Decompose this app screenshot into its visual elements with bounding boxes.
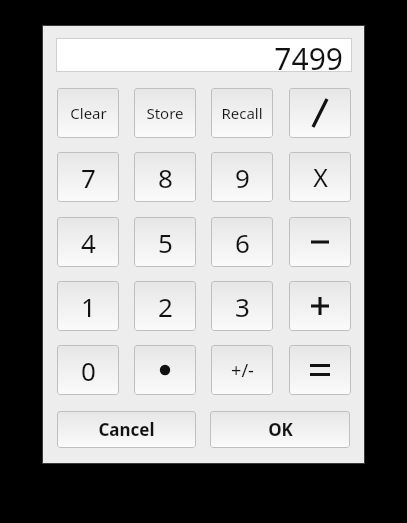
button[interactable]: 6 xyxy=(211,217,273,267)
staticText: Store xyxy=(146,103,184,123)
button[interactable]: Decimal point xyxy=(134,345,196,395)
staticText: 1 xyxy=(81,289,96,324)
staticText: +/- xyxy=(231,358,254,383)
button[interactable]: 8 xyxy=(134,152,196,202)
button[interactable]: Store xyxy=(134,88,196,138)
staticText: 4 xyxy=(81,225,96,260)
button[interactable]: Clear xyxy=(57,88,119,138)
button[interactable]: Recall xyxy=(211,88,273,138)
button[interactable]: OK xyxy=(210,411,350,448)
button[interactable]: Equals xyxy=(289,345,351,395)
staticText: Cancel xyxy=(98,418,155,441)
button[interactable]: 2 xyxy=(134,281,196,331)
button[interactable]: 5 xyxy=(134,217,196,267)
staticText: OK xyxy=(268,418,293,441)
button[interactable]: 7 xyxy=(57,152,119,202)
button[interactable]: X xyxy=(289,152,351,202)
button[interactable]: 9 xyxy=(211,152,273,202)
button[interactable]: Cancel xyxy=(57,411,196,448)
staticText: 7 xyxy=(81,160,96,195)
button[interactable]: 4 xyxy=(57,217,119,267)
staticText: 6 xyxy=(235,225,250,260)
staticText: X xyxy=(313,160,328,194)
staticText: 2 xyxy=(158,289,173,324)
button[interactable]: Minus xyxy=(289,217,351,267)
staticText: 5 xyxy=(158,225,173,260)
button[interactable]: Divide xyxy=(289,88,351,138)
staticText: 3 xyxy=(235,289,250,324)
staticText: 7499 xyxy=(274,38,343,72)
button[interactable]: 3 xyxy=(211,281,273,331)
staticText: Recall xyxy=(221,103,263,123)
button[interactable]: 1 xyxy=(57,281,119,331)
staticText: 8 xyxy=(158,160,173,195)
staticText: 0 xyxy=(81,353,96,388)
staticText: Clear xyxy=(70,103,107,123)
button[interactable]: 0 xyxy=(57,345,119,395)
button[interactable]: +/- xyxy=(211,345,273,395)
button[interactable]: Plus xyxy=(289,281,351,331)
staticText: 9 xyxy=(235,160,250,195)
button[interactable]: 7499 xyxy=(56,38,352,72)
